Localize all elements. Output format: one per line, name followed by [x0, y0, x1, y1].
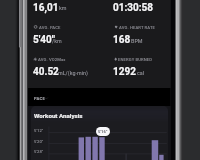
- staticText: AVG. VO2Max: [38, 57, 66, 62]
- button[interactable]: 5'16": [96, 127, 110, 136]
- button[interactable]: [30, 90, 62, 104]
- staticText: ENERGY BURNED: [118, 57, 153, 62]
- staticText: 1292: [113, 66, 136, 78]
- staticText: 16,01: [33, 2, 59, 14]
- staticText: /km: [52, 38, 62, 44]
- staticText: 168: [113, 34, 131, 46]
- staticText: AVG. PACE: [39, 25, 61, 30]
- staticText: 5'20": [34, 139, 44, 144]
- staticText: mL/(kg·min): [58, 70, 88, 76]
- staticText: 5'28": [34, 149, 44, 154]
- staticText: 01:30:58: [113, 2, 154, 14]
- staticText: 40.52: [33, 66, 59, 78]
- staticText: cal: [137, 70, 145, 76]
- staticText: km: [59, 5, 67, 11]
- staticText: PACE: [34, 96, 46, 101]
- button[interactable]: Expand pace menu: [44, 95, 50, 101]
- staticText: AVG. HEART RATE: [119, 25, 156, 30]
- staticText: 5'40": [33, 34, 56, 46]
- staticText: BPM: [131, 38, 143, 44]
- staticText: Workout Analysis: [34, 112, 83, 119]
- staticText: 5'16": [98, 129, 108, 134]
- staticText: 5'12": [34, 128, 44, 133]
